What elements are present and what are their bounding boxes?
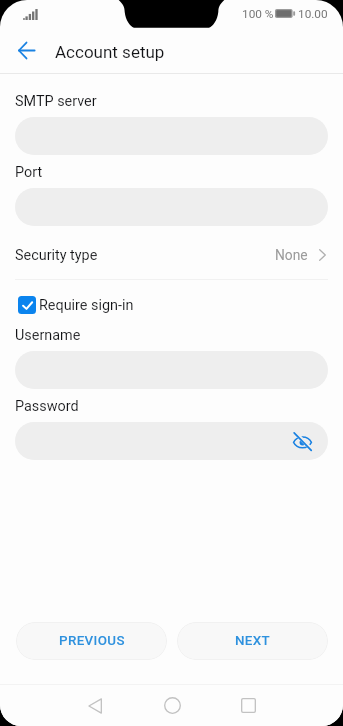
button[interactable]: Security type — [0, 240, 343, 270]
button[interactable]: Require sign-in — [0, 290, 343, 320]
button[interactable]: Show password — [289, 428, 315, 454]
button[interactable]: PREVIOUS — [16, 622, 167, 660]
staticText: 10.00 — [298, 7, 328, 21]
button[interactable]: Show password — [15, 422, 328, 460]
staticText: None — [275, 247, 308, 263]
staticText: PREVIOUS — [59, 633, 125, 649]
button[interactable]: Back — [75, 685, 115, 726]
staticText: SMTP server — [15, 93, 97, 110]
staticText: NEXT — [235, 633, 271, 649]
staticText: Username — [15, 327, 81, 344]
staticText: Account setup — [55, 42, 165, 62]
staticText: Password — [15, 398, 79, 415]
staticText: Security type — [15, 247, 98, 264]
staticText: 100 % — [242, 7, 274, 21]
staticText: Require sign-in — [39, 297, 134, 314]
staticText: Port — [15, 164, 43, 181]
button[interactable]: NEXT — [177, 622, 328, 660]
button[interactable]: Home — [152, 685, 192, 726]
button[interactable]: Recents — [228, 685, 268, 726]
button[interactable]: Back — [11, 35, 42, 66]
